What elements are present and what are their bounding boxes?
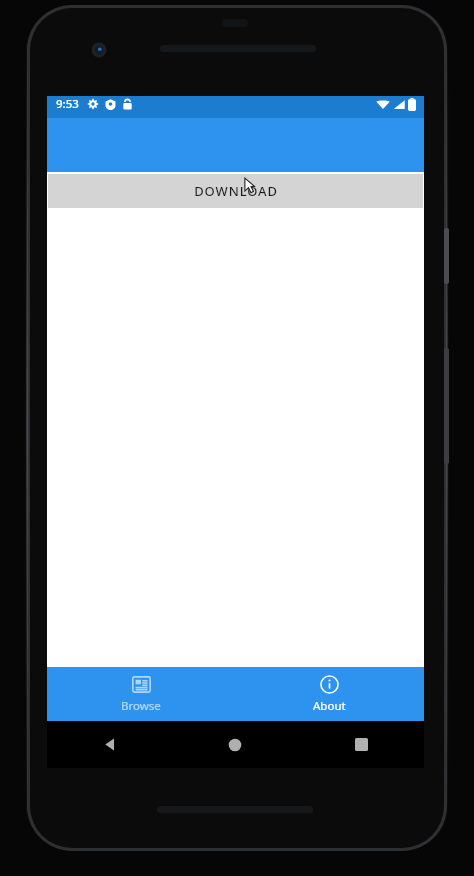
- button[interactable]: Browse: [47, 667, 235, 721]
- button[interactable]: Back: [47, 721, 172, 768]
- button[interactable]: About: [235, 667, 424, 721]
- button[interactable]: DOWNLOAD: [48, 174, 423, 208]
- button[interactable]: Recent apps: [298, 721, 424, 768]
- staticText: Browse: [121, 698, 161, 714]
- staticText: About: [313, 698, 346, 714]
- staticText: DOWNLOAD: [194, 182, 278, 200]
- staticText: 9:53: [56, 96, 79, 112]
- button[interactable]: Home: [172, 721, 298, 768]
